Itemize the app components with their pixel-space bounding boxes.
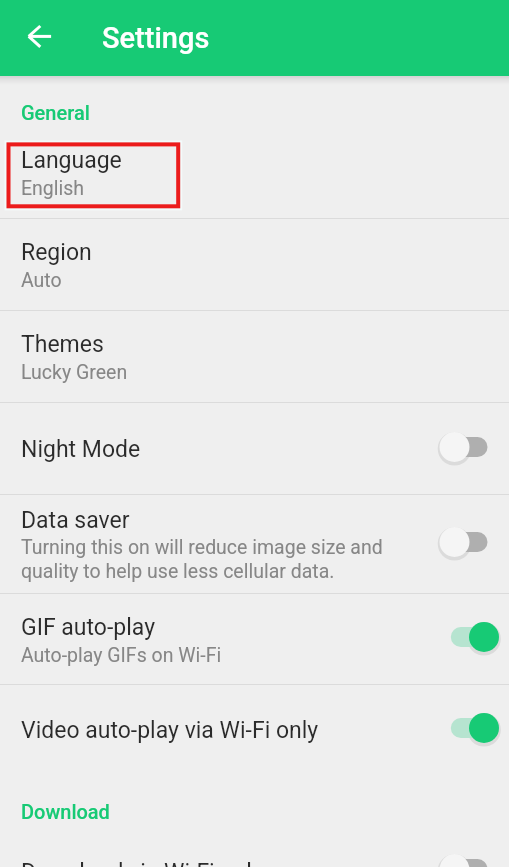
button[interactable]: Download via Wi-Fi only bbox=[0, 825, 509, 867]
button[interactable]: Themes bbox=[0, 311, 509, 402]
button[interactable]: Switch off bbox=[439, 431, 499, 463]
staticText: Night Mode bbox=[21, 436, 141, 463]
button[interactable]: Night Mode bbox=[0, 403, 509, 494]
staticText: Lucky Green bbox=[21, 361, 128, 384]
staticText: Region bbox=[21, 239, 92, 266]
button[interactable]: Data saver bbox=[0, 495, 509, 593]
button[interactable]: Switch on bbox=[439, 712, 499, 744]
staticText: English bbox=[21, 177, 85, 200]
button[interactable]: GIF auto-play bbox=[0, 594, 509, 684]
button[interactable]: Switch off bbox=[439, 853, 499, 867]
staticText: Language bbox=[21, 147, 122, 174]
staticText: General bbox=[21, 101, 90, 124]
staticText: Settings bbox=[102, 21, 210, 55]
button[interactable]: Region bbox=[0, 219, 509, 310]
staticText: Data saver bbox=[21, 507, 130, 534]
button[interactable]: Back bbox=[13, 13, 59, 59]
staticText: Turning this on will reduce image size a… bbox=[21, 536, 383, 582]
staticText: GIF auto-play bbox=[21, 614, 156, 641]
button[interactable]: Video auto-play via Wi-Fi only bbox=[0, 685, 509, 775]
staticText: Download via Wi-Fi only bbox=[21, 859, 263, 867]
button[interactable]: Switch off bbox=[439, 526, 499, 558]
staticText: Video auto-play via Wi-Fi only bbox=[21, 717, 319, 744]
button[interactable]: Switch on bbox=[439, 621, 499, 653]
staticText: Download bbox=[21, 800, 110, 823]
staticText: Auto-play GIFs on Wi-Fi bbox=[21, 644, 222, 667]
staticText: Themes bbox=[21, 331, 104, 358]
staticText: Auto bbox=[21, 269, 62, 292]
button[interactable]: Language bbox=[0, 126, 509, 218]
